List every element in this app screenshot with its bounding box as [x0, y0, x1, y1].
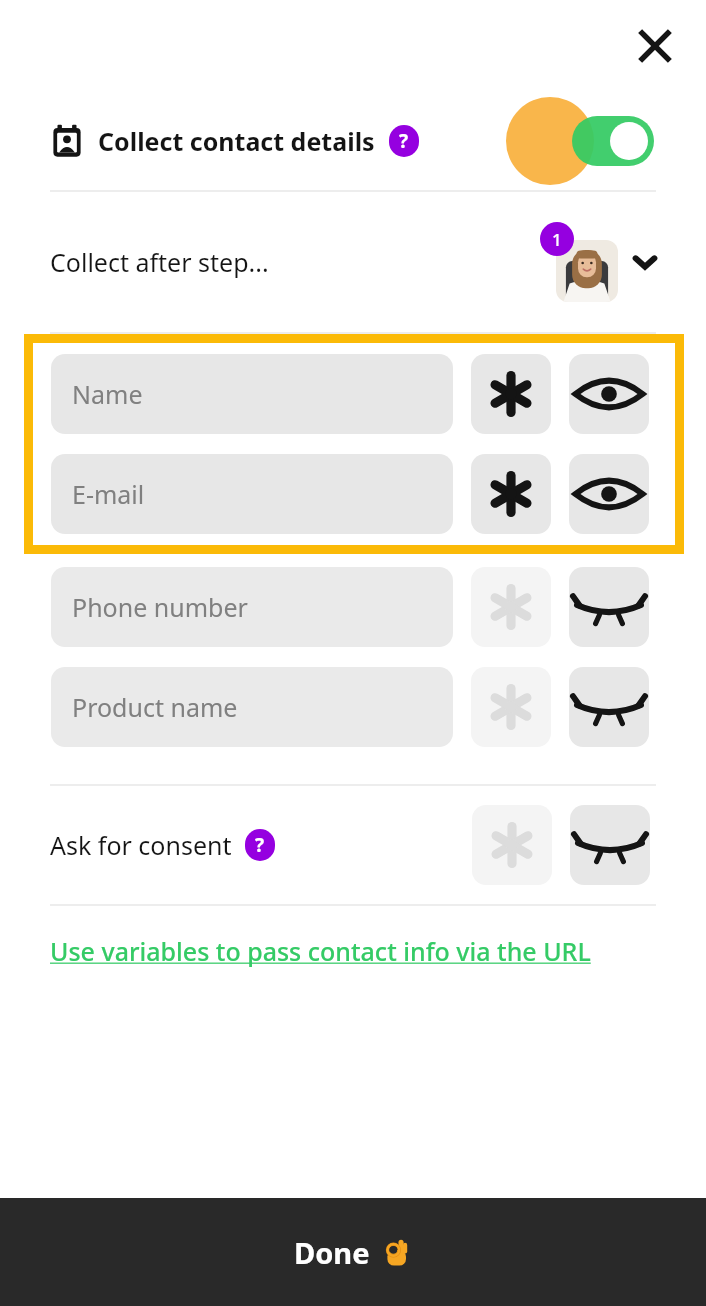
- button[interactable]: Mark required: [471, 567, 551, 647]
- button[interactable]: Phone number: [51, 567, 453, 647]
- button[interactable]: Collect after step...: [0, 192, 706, 332]
- button[interactable]: Help: [389, 125, 419, 157]
- staticText: ?: [255, 832, 265, 858]
- button[interactable]: Done: [0, 1198, 706, 1306]
- staticText: Product name: [72, 690, 238, 724]
- button[interactable]: Mark required: [471, 354, 551, 434]
- button[interactable]: Hide field: [569, 454, 649, 534]
- button[interactable]: Mark required: [472, 805, 552, 885]
- button[interactable]: Mark required: [471, 454, 551, 534]
- staticText: Collect after step...: [50, 245, 269, 279]
- button[interactable]: Close: [632, 23, 678, 69]
- button[interactable]: E-mail: [51, 454, 453, 534]
- button[interactable]: Hide field: [570, 805, 650, 885]
- staticText: Done: [294, 1233, 370, 1272]
- staticText: 1: [552, 228, 562, 251]
- button[interactable]: Help: [245, 829, 275, 861]
- button[interactable]: Mark required: [471, 667, 551, 747]
- button[interactable]: Product name: [51, 667, 453, 747]
- button[interactable]: Use variables to pass contact info via t…: [0, 906, 706, 996]
- button[interactable]: Name: [51, 354, 453, 434]
- staticText: Ask for consent: [50, 828, 232, 862]
- staticText: Use variables to pass contact info via t…: [50, 934, 591, 968]
- button[interactable]: Toggle collect contact details: [504, 95, 654, 187]
- staticText: Phone number: [72, 590, 248, 624]
- button[interactable]: Show field: [569, 567, 649, 647]
- staticText: Collect contact details: [98, 124, 375, 158]
- staticText: ?: [399, 128, 409, 154]
- button[interactable]: Show field: [569, 667, 649, 747]
- staticText: E-mail: [72, 477, 145, 511]
- button[interactable]: Hide field: [569, 354, 649, 434]
- staticText: Name: [72, 377, 143, 411]
